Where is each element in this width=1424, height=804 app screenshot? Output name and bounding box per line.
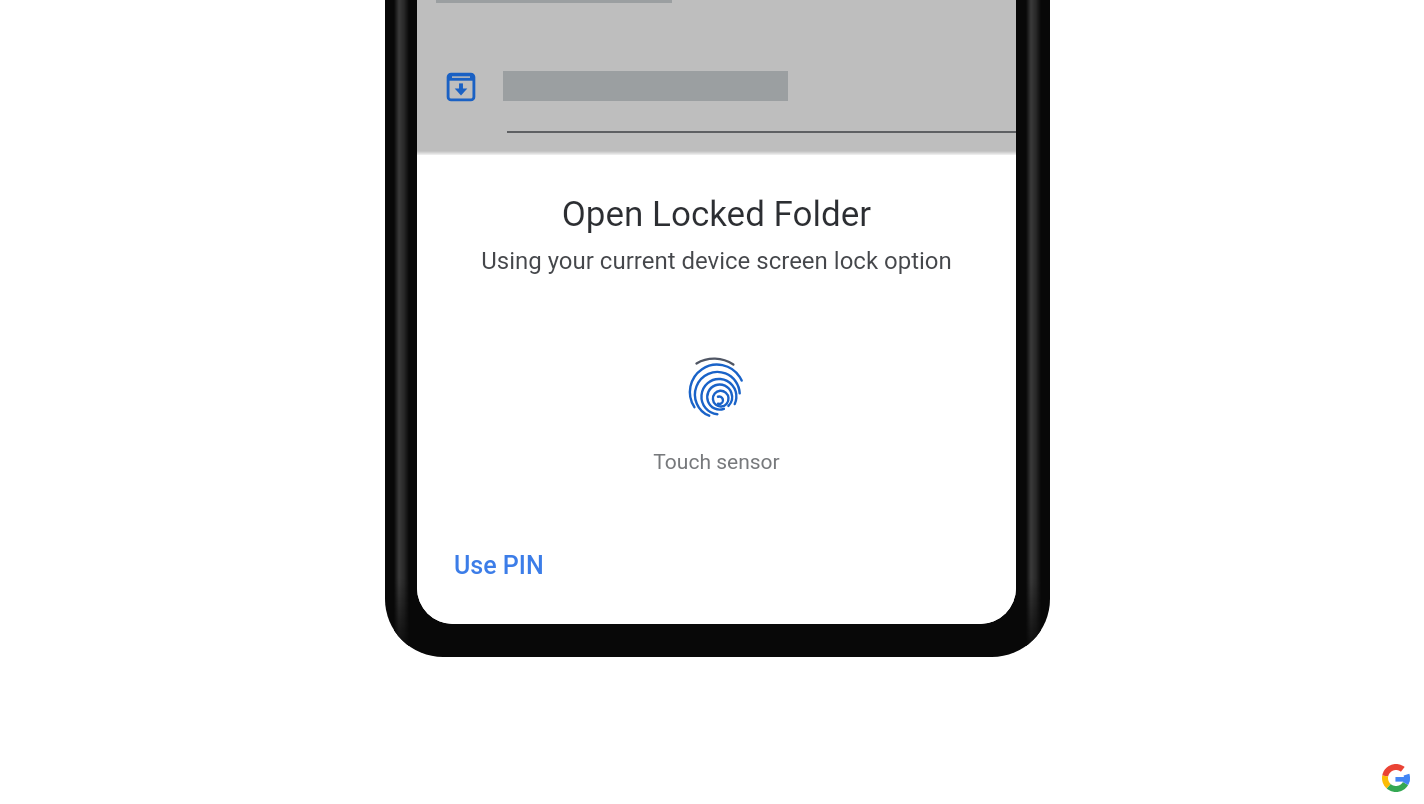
staticText: Use PIN (454, 551, 544, 580)
button[interactable]: Fingerprint sensor (686, 355, 747, 421)
button[interactable]: Use PIN (442, 545, 556, 586)
other: Archive (446, 72, 476, 102)
button[interactable]: Archive (417, 50, 1016, 122)
staticText: Open Locked Folder (417, 194, 1016, 235)
staticText: Using your current device screen lock op… (417, 247, 1016, 275)
staticText: Touch sensor (417, 450, 1016, 475)
